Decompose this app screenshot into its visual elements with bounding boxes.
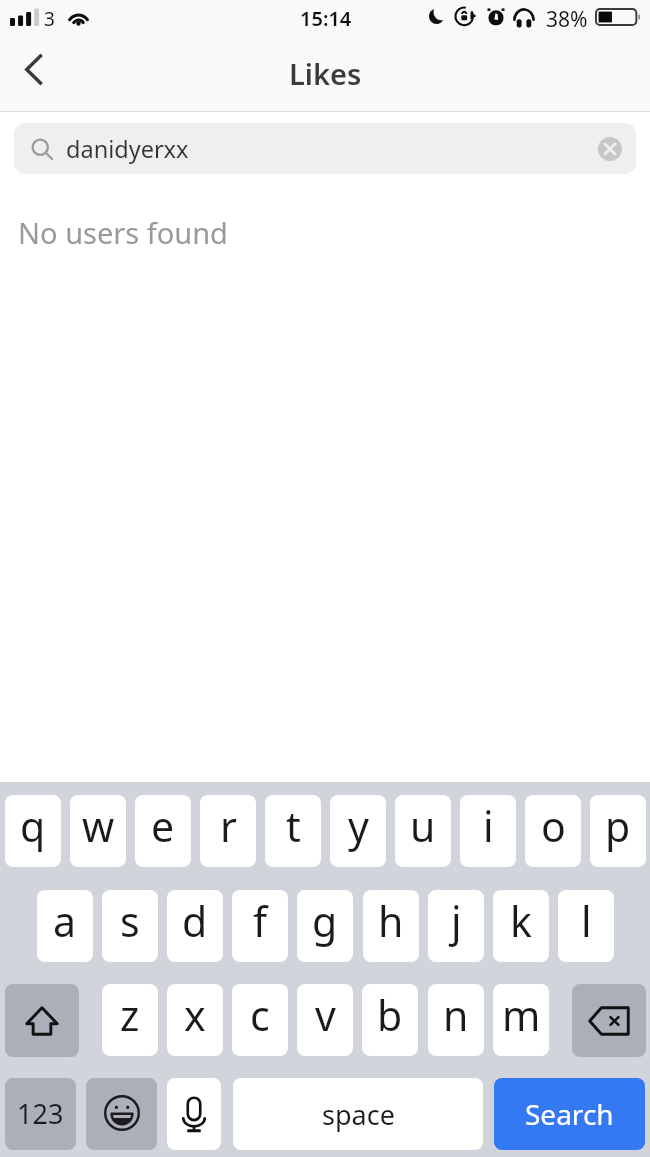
button[interactable]: danidyerxx — [14, 123, 636, 174]
staticText: h — [378, 893, 404, 949]
button[interactable]: c — [232, 984, 288, 1056]
staticText: e — [151, 798, 175, 854]
staticText: x — [184, 987, 206, 1043]
button[interactable]: Emoji — [86, 1078, 157, 1150]
button[interactable]: j — [428, 890, 484, 962]
staticText: d — [182, 893, 208, 949]
button[interactable]: m — [493, 984, 549, 1056]
staticText: Search — [525, 1095, 614, 1133]
button[interactable]: v — [297, 984, 353, 1056]
button[interactable]: x — [167, 984, 223, 1056]
staticText: s — [120, 893, 140, 949]
button[interactable]: space — [233, 1078, 483, 1150]
button[interactable]: n — [428, 984, 484, 1056]
button[interactable]: 123 — [5, 1078, 76, 1150]
staticText: 3 — [44, 6, 55, 32]
button[interactable]: g — [297, 890, 353, 962]
button[interactable]: f — [232, 890, 288, 962]
staticText: v — [315, 987, 336, 1043]
staticText: c — [250, 987, 270, 1043]
button[interactable]: e — [135, 795, 191, 867]
staticText: i — [483, 798, 494, 854]
button[interactable]: Shift — [5, 984, 79, 1057]
button[interactable]: h — [363, 890, 419, 962]
button[interactable]: t — [265, 795, 321, 867]
button[interactable]: q — [5, 795, 61, 867]
button[interactable]: o — [525, 795, 581, 867]
button[interactable]: Back — [2, 41, 68, 112]
staticText: o — [541, 798, 566, 854]
button[interactable]: w — [70, 795, 126, 867]
staticText: g — [312, 893, 338, 949]
staticText: No users found — [18, 213, 228, 252]
button[interactable]: Clear text — [597, 136, 623, 162]
button[interactable]: l — [558, 890, 614, 962]
staticText: a — [53, 893, 77, 949]
staticText: u — [410, 798, 436, 854]
staticText: z — [120, 987, 140, 1043]
button[interactable]: y — [330, 795, 386, 867]
staticText: 123 — [17, 1095, 64, 1132]
staticText: j — [451, 893, 462, 949]
staticText: danidyerxx — [66, 133, 189, 165]
staticText: n — [443, 987, 469, 1043]
staticText: y — [348, 798, 369, 854]
button[interactable]: Dictation — [167, 1078, 221, 1150]
staticText: l — [581, 893, 592, 949]
button[interactable]: Backspace — [572, 984, 646, 1057]
staticText: q — [20, 798, 46, 854]
staticText: Likes — [289, 54, 362, 93]
button[interactable]: d — [167, 890, 223, 962]
staticText: f — [253, 893, 268, 949]
staticText: b — [377, 987, 403, 1043]
staticText: r — [220, 798, 237, 854]
staticText: p — [605, 798, 631, 854]
staticText: space — [322, 1096, 395, 1133]
staticText: m — [502, 987, 541, 1043]
button[interactable]: b — [362, 984, 418, 1056]
button[interactable]: k — [493, 890, 549, 962]
button[interactable]: Search — [494, 1078, 645, 1150]
button[interactable]: i — [460, 795, 516, 867]
staticText: k — [510, 893, 532, 949]
staticText: 15:14 — [300, 5, 352, 32]
button[interactable]: z — [102, 984, 158, 1056]
button[interactable]: p — [590, 795, 646, 867]
button[interactable]: s — [102, 890, 158, 962]
button[interactable]: r — [200, 795, 256, 867]
button[interactable]: a — [37, 890, 93, 962]
button[interactable]: u — [395, 795, 451, 867]
staticText: 38% — [546, 5, 588, 34]
staticText: t — [286, 798, 301, 854]
staticText: w — [82, 798, 115, 854]
